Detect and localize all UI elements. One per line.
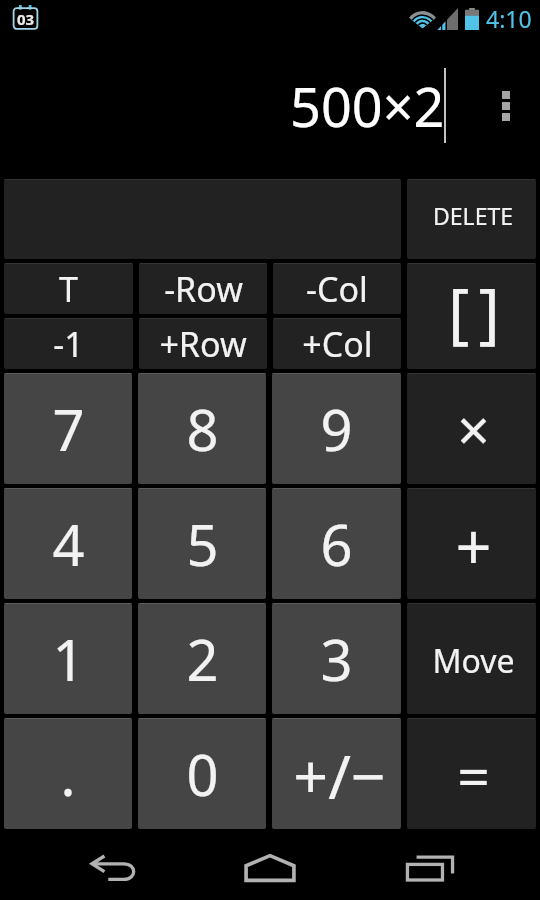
staticText: Move (432, 639, 515, 683)
button[interactable]: 7 (4, 373, 132, 484)
button[interactable]: -Row (139, 263, 267, 314)
staticText: 03 (17, 9, 35, 29)
staticText: [] (448, 267, 509, 356)
staticText: -Col (306, 266, 368, 312)
staticText: 9 (320, 391, 353, 467)
staticText: T (59, 266, 78, 312)
button[interactable]: Move (407, 603, 536, 714)
button[interactable]: +/− (272, 718, 401, 829)
staticText: +Row (159, 321, 247, 367)
button[interactable]: + (407, 488, 536, 599)
staticText: + (455, 503, 492, 589)
button[interactable]: DELETE (407, 179, 536, 259)
button[interactable]: 1 (4, 603, 132, 714)
staticText: 7 (52, 391, 85, 467)
button[interactable]: 0 (138, 718, 266, 829)
button[interactable]: 8 (138, 373, 266, 484)
button[interactable]: +Row (139, 318, 267, 369)
button[interactable]: . (4, 718, 132, 829)
button[interactable]: 5 (138, 488, 266, 599)
staticText: 2 (186, 621, 219, 697)
button[interactable]: Recent apps (380, 831, 480, 900)
button[interactable]: Back (60, 831, 160, 900)
staticText: 6 (320, 506, 353, 582)
staticText: 4 (52, 506, 85, 582)
button[interactable]: 2 (138, 603, 266, 714)
button[interactable]: 4 (4, 488, 132, 599)
staticText: 5 (186, 506, 219, 582)
staticText: . (60, 736, 76, 812)
button[interactable]: [] (407, 263, 536, 369)
staticText: × (457, 390, 490, 468)
button[interactable]: 6 (272, 488, 401, 599)
staticText: +Col (302, 321, 373, 367)
button[interactable]: More options (483, 73, 529, 139)
staticText: = (457, 736, 490, 814)
staticText: 4:10 (486, 3, 532, 34)
button[interactable]: Home (220, 831, 320, 900)
staticText: +/− (293, 734, 386, 817)
staticText: 1 (52, 621, 85, 697)
button[interactable]: -Col (273, 263, 401, 314)
staticText: 3 (320, 621, 353, 697)
button[interactable]: +Col (273, 318, 401, 369)
button[interactable]: T (4, 263, 133, 314)
staticText: -1 (53, 321, 84, 367)
button[interactable]: = (407, 718, 536, 829)
staticText: 0 (186, 736, 219, 812)
button[interactable]: 9 (272, 373, 401, 484)
staticText: 8 (186, 391, 219, 467)
button[interactable]: 3 (272, 603, 401, 714)
staticText: 500×2 (290, 69, 445, 143)
button[interactable]: -1 (4, 318, 133, 369)
staticText: DELETE (433, 200, 513, 231)
staticText: -Row (164, 266, 243, 312)
button[interactable]: × (407, 373, 536, 484)
